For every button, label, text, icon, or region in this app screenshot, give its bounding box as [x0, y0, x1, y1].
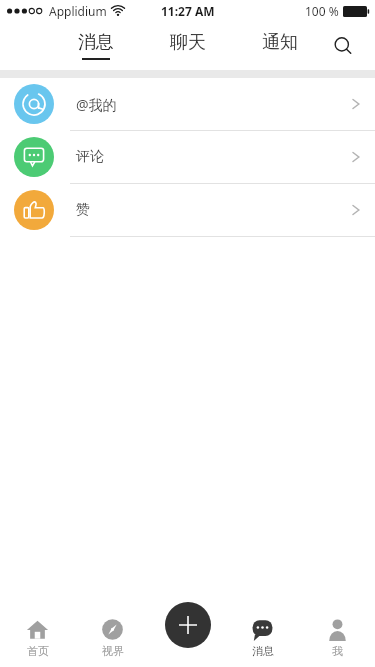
button[interactable]: 首页 — [0, 609, 75, 667]
button[interactable]: 消息 — [72, 29, 120, 62]
staticText: 100 % — [305, 3, 339, 19]
staticText: 通知 — [262, 31, 298, 54]
staticText: 聊天 — [170, 31, 206, 54]
staticText: 评论 — [76, 148, 104, 166]
staticText: 我 — [332, 644, 343, 658]
staticText: 消息 — [252, 644, 274, 658]
staticText: @我的 — [76, 95, 117, 114]
button[interactable]: Search — [325, 28, 361, 64]
staticText: 11:27 AM — [161, 3, 215, 19]
button[interactable]: 赞 — [0, 184, 375, 236]
staticText: 首页 — [27, 644, 49, 658]
staticText: 视界 — [102, 644, 124, 658]
button[interactable]: @我的 — [0, 78, 375, 130]
button[interactable]: 消息 — [225, 609, 300, 667]
button[interactable]: 聊天 — [164, 29, 212, 62]
button[interactable]: 评论 — [0, 131, 375, 183]
button[interactable]: 视界 — [75, 609, 150, 667]
button[interactable]: 我 — [300, 609, 375, 667]
button[interactable]: Create — [165, 602, 211, 648]
button[interactable]: 通知 — [256, 29, 304, 62]
staticText: 消息 — [78, 31, 114, 54]
staticText: 赞 — [76, 201, 90, 219]
staticText: Applidium — [49, 3, 107, 19]
